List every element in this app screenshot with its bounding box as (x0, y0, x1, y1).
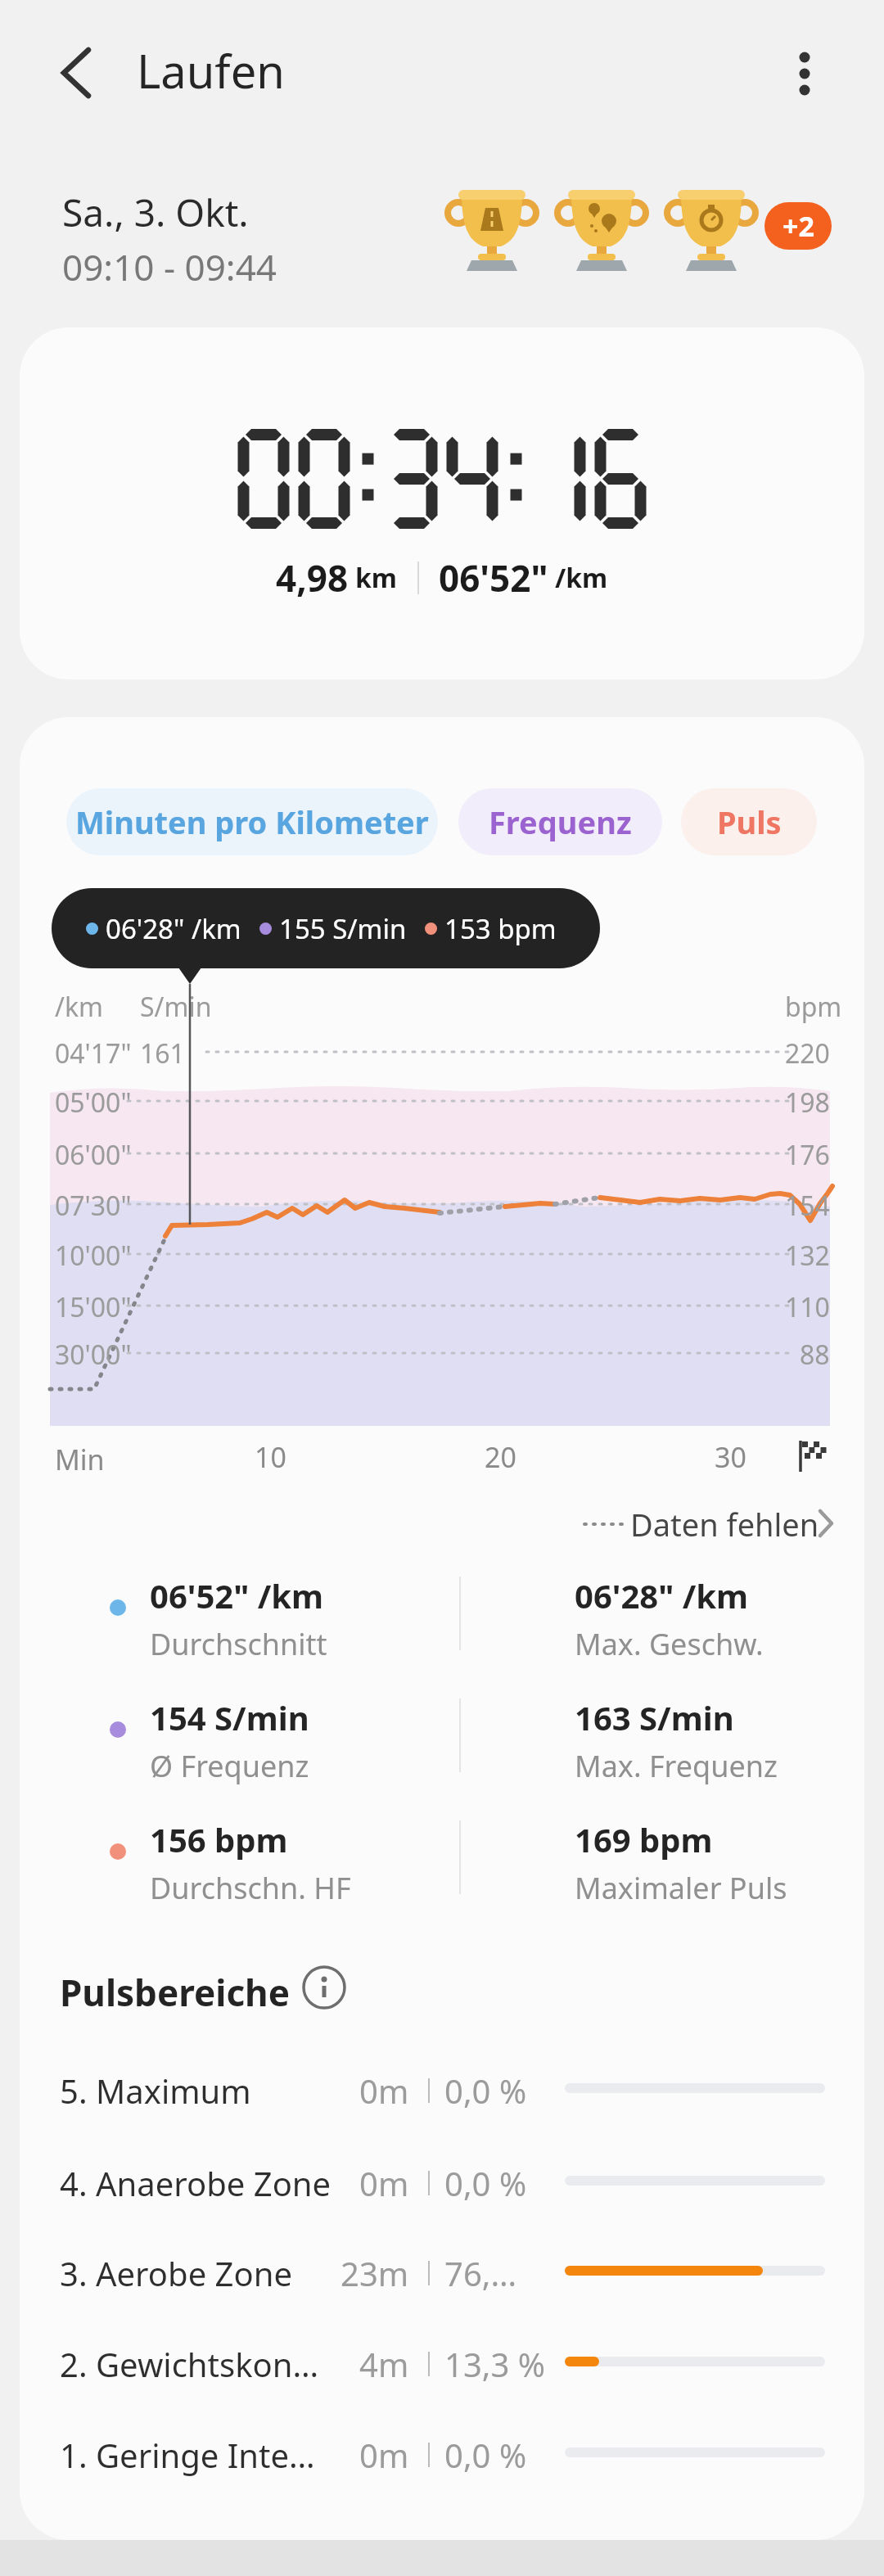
staticText: 13,3 % (444, 2342, 545, 2386)
staticText: Pulsbereiche (60, 1968, 290, 2017)
staticText: 23m (341, 2251, 409, 2295)
staticText: 0,0 % (444, 2161, 527, 2205)
staticText: 5. Maximum (60, 2068, 251, 2113)
staticText: 176 (785, 1137, 830, 1173)
staticText: 10 (255, 1438, 286, 1476)
button[interactable]: Frequenz (458, 788, 662, 855)
button[interactable]: 1. Geringe Inte… (20, 2420, 864, 2485)
button[interactable] (49, 45, 106, 102)
staticText: /km (555, 560, 608, 596)
staticText: Ø Frequenz (150, 1746, 309, 1786)
staticText: 0m (359, 2161, 409, 2205)
staticText: 20 (485, 1438, 516, 1476)
staticText: 0,0 % (444, 2068, 527, 2113)
staticText: Maximaler Puls (575, 1868, 787, 1908)
staticText: 06'52" (439, 553, 548, 602)
staticText: Sa., 3. Okt. (62, 187, 249, 238)
staticText: Frequenz (489, 801, 632, 843)
staticText: 2. Gewichtskon… (60, 2342, 319, 2386)
button[interactable]: 3. Aerobe Zone (20, 2238, 864, 2303)
staticText: /km (55, 989, 103, 1025)
staticText: 198 (785, 1085, 830, 1121)
staticText: 220 (785, 1035, 830, 1071)
staticText: 05'00" (55, 1085, 132, 1121)
staticText: +2 (783, 207, 814, 245)
staticText: 0m (359, 2068, 409, 2113)
staticText: 30'00" (55, 1337, 132, 1373)
staticText: Durchschnitt (150, 1624, 327, 1664)
button[interactable] (784, 47, 825, 100)
staticText: Max. Frequenz (575, 1746, 778, 1786)
button[interactable]: 5. Maximum (20, 2055, 864, 2121)
staticText: 06'28" /km (575, 1573, 749, 1617)
staticText: 04'17" (55, 1035, 132, 1071)
button[interactable]: 2. Gewichtskon… (20, 2329, 864, 2394)
staticText: 156 bpm (150, 1817, 288, 1861)
staticText: 154 (785, 1188, 830, 1224)
staticText: 30 (715, 1438, 746, 1476)
staticText: 88 (800, 1337, 830, 1373)
button[interactable]: Minuten pro Kilometer (66, 788, 438, 855)
staticText: 07'30" (55, 1188, 132, 1224)
staticText: 4,98 (276, 553, 349, 602)
staticText: 132 (785, 1238, 830, 1274)
button[interactable]: Puls (681, 788, 817, 855)
staticText: Puls (717, 801, 782, 843)
staticText: 4m (359, 2342, 409, 2386)
staticText: 1. Geringe Inte… (60, 2433, 315, 2477)
button[interactable] (301, 1965, 347, 2010)
staticText: 06'00" (55, 1137, 132, 1173)
staticText: 110 (785, 1289, 830, 1325)
staticText: Minuten pro Kilometer (75, 801, 429, 843)
staticText: Min (55, 1441, 105, 1478)
button[interactable]: +2 (764, 202, 832, 250)
staticText: 155 S/min (279, 910, 407, 947)
staticText: 153 bpm (444, 910, 557, 947)
staticText: 06'28" /km (106, 910, 241, 947)
button[interactable]: 4. Anaerobe Zone (20, 2148, 864, 2213)
staticText: 06'52" /km (150, 1573, 324, 1617)
staticText: S/min (140, 989, 212, 1025)
staticText: Max. Geschw. (575, 1624, 764, 1664)
staticText: km (355, 560, 398, 596)
staticText: 169 bpm (575, 1817, 713, 1861)
staticText: 3. Aerobe Zone (60, 2251, 292, 2295)
staticText: 154 S/min (150, 1695, 309, 1739)
staticText: Durchschn. HF (150, 1868, 351, 1908)
staticText: 76,… (444, 2251, 517, 2295)
staticText: 4. Anaerobe Zone (60, 2161, 331, 2205)
staticText: 10'00" (55, 1238, 132, 1274)
staticText: 161 (140, 1035, 185, 1071)
staticText: bpm (785, 989, 842, 1025)
staticText: 09:10 - 09:44 (62, 242, 277, 291)
button[interactable]: Daten fehlen (584, 1501, 846, 1547)
staticText: 163 S/min (575, 1695, 734, 1739)
staticText: Laufen (137, 39, 285, 102)
staticText: 0,0 % (444, 2433, 527, 2477)
staticText: 15'00" (55, 1289, 132, 1325)
staticText: 0m (359, 2433, 409, 2477)
staticText: Daten fehlen (630, 1503, 819, 1545)
